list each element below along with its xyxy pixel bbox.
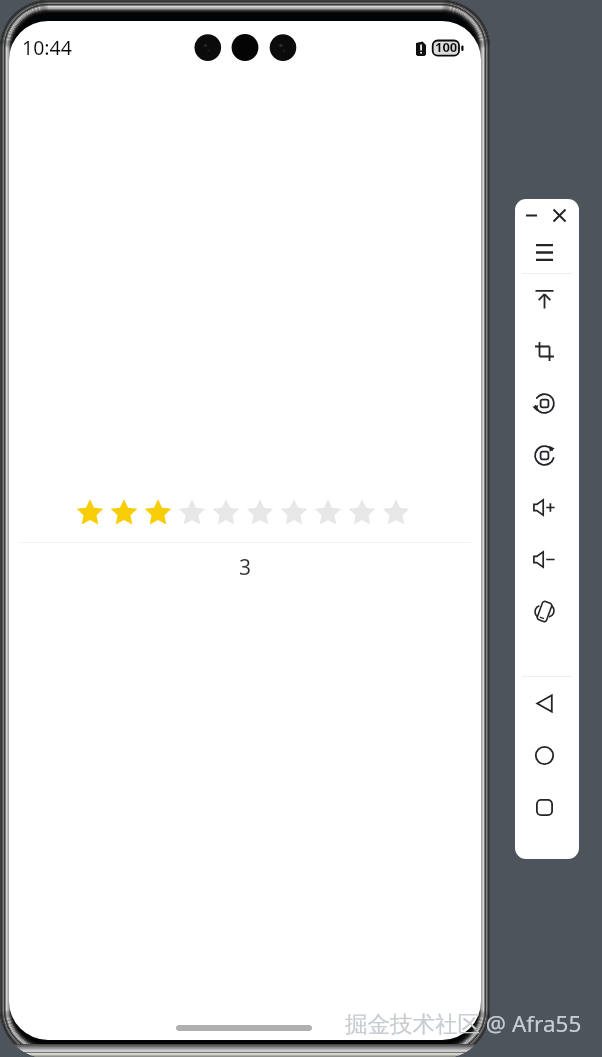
button[interactable]: Rate 5 xyxy=(209,493,243,531)
button[interactable]: Close xyxy=(546,199,579,232)
button[interactable]: Rate 10 xyxy=(379,493,413,531)
button[interactable]: Volume up xyxy=(515,481,579,533)
button[interactable]: Rotate left xyxy=(515,377,579,429)
button[interactable]: Menu xyxy=(515,232,579,272)
button[interactable]: Rate 7 xyxy=(277,493,311,531)
button[interactable]: Power xyxy=(515,273,579,325)
button[interactable]: Rate 6 xyxy=(243,493,277,531)
button[interactable]: Home xyxy=(515,729,579,781)
button[interactable]: Rotate right xyxy=(515,429,579,481)
button[interactable]: Back xyxy=(515,677,579,729)
button[interactable]: Minimize xyxy=(515,199,546,232)
staticText: 100 xyxy=(435,38,458,56)
button[interactable]: Rate 3 xyxy=(141,493,175,531)
button[interactable]: Screenshot xyxy=(515,325,579,377)
button[interactable]: Fold xyxy=(515,585,579,637)
staticText: 10:44 xyxy=(22,34,72,61)
button[interactable]: Overview xyxy=(515,781,579,833)
button[interactable]: Rate 8 xyxy=(311,493,345,531)
button[interactable]: Rate 1 xyxy=(73,493,107,531)
staticText: 掘金技术社区 @ Afra55 xyxy=(345,1008,582,1039)
button[interactable]: Rate 9 xyxy=(345,493,379,531)
button[interactable]: Volume down xyxy=(515,533,579,585)
staticText: 3 xyxy=(9,553,481,582)
button[interactable]: Rate 4 xyxy=(175,493,209,531)
button[interactable]: Rate 2 xyxy=(107,493,141,531)
